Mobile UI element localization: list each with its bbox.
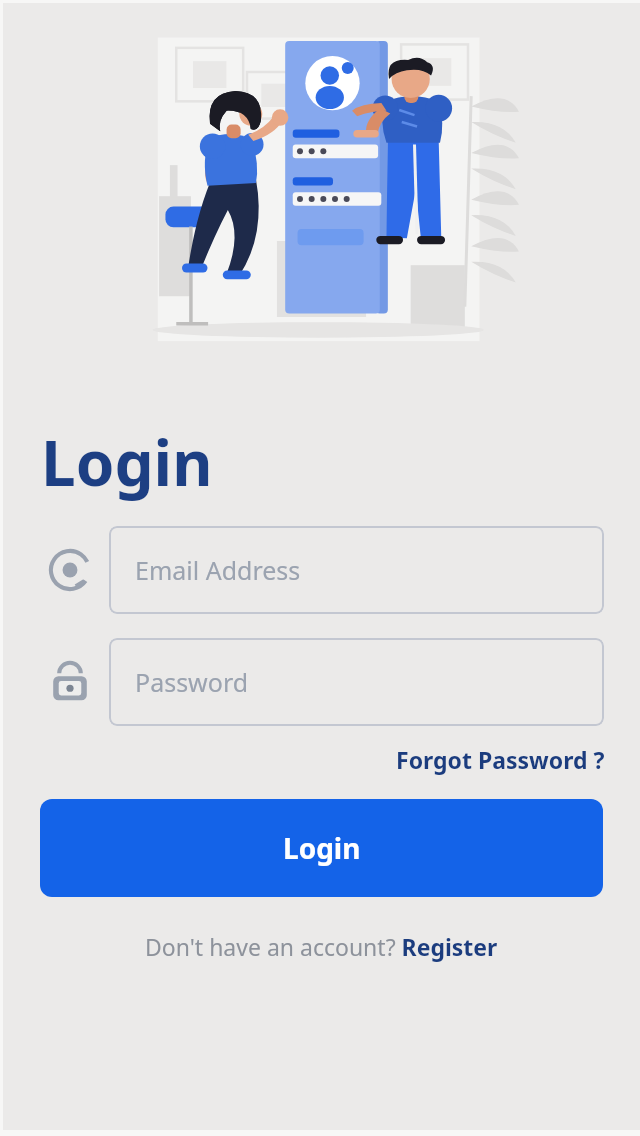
- other: Email: [39, 539, 101, 601]
- button[interactable]: Don't have an account? Register: [135, 925, 508, 968]
- staticText: Forgot Password ?: [396, 744, 605, 775]
- button[interactable]: Login: [40, 799, 603, 897]
- staticText: Login: [283, 829, 361, 867]
- button[interactable]: Forgot Password ?: [396, 740, 640, 779]
- staticText: Login: [41, 420, 213, 504]
- staticText: Password: [135, 665, 249, 699]
- staticText: Don't have an account? Register: [145, 931, 498, 962]
- other: Password: [39, 651, 101, 713]
- button[interactable]: Email Address: [109, 526, 604, 614]
- staticText: Email Address: [135, 553, 301, 587]
- button[interactable]: Password: [109, 638, 604, 726]
